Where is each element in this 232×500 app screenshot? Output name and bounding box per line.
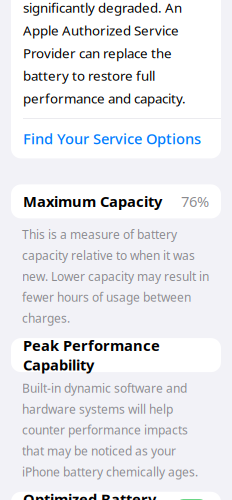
button[interactable]: Optimized Battery Charging bbox=[11, 492, 221, 500]
staticText: Built-in dynamic software and hardware s… bbox=[22, 380, 198, 480]
staticText: Peak Performance Capability bbox=[23, 336, 160, 375]
button[interactable]: Find Your Service Options bbox=[11, 119, 221, 158]
staticText: Optimized Battery Charging bbox=[23, 489, 156, 500]
staticText: This is a measure of battery capacity re… bbox=[22, 226, 209, 326]
button[interactable]: Maximum Capacity bbox=[11, 184, 221, 218]
staticText: Find Your Service Options bbox=[23, 129, 201, 148]
button[interactable]: Peak Performance Capability bbox=[11, 338, 221, 372]
staticText: Maximum Capacity bbox=[23, 192, 162, 211]
staticText: 76% bbox=[181, 192, 209, 211]
staticText: Your battery's health is significantly d… bbox=[23, 0, 186, 107]
